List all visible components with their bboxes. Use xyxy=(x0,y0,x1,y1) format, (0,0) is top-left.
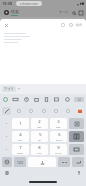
button[interactable]: 9 xyxy=(50,144,67,155)
staticText: JKL xyxy=(38,138,42,141)
staticText: PQRS xyxy=(17,151,24,154)
staticText: GHI xyxy=(18,138,23,141)
staticText: 3 xyxy=(57,119,60,125)
button[interactable]: 6 xyxy=(50,131,67,142)
staticText: DEF xyxy=(56,125,61,128)
button[interactable]: AI xyxy=(74,97,84,102)
button[interactable]: globe xyxy=(2,157,12,167)
staticText: MNO xyxy=(56,138,62,141)
button[interactable]: Delete xyxy=(75,107,84,115)
staticText: すべて xyxy=(59,10,69,14)
staticText: AI xyxy=(78,98,81,102)
button[interactable]: Quick action 1 xyxy=(14,107,23,115)
button[interactable]: Settings xyxy=(33,96,40,103)
button[interactable]: Voice search xyxy=(60,22,66,28)
staticText: 123 xyxy=(17,160,23,165)
staticText: a chrome.com xyxy=(20,2,38,6)
button[interactable]: 8 xyxy=(31,144,48,155)
button[interactable]: conv xyxy=(69,131,84,142)
staticText: 6 xyxy=(58,132,61,138)
staticText: アプリ xyxy=(4,87,14,91)
button[interactable]: Quick action 2 xyxy=(26,107,35,115)
staticText: 1 xyxy=(19,121,22,127)
button[interactable]: Site information xyxy=(3,9,9,15)
button[interactable]: arrows xyxy=(58,157,70,167)
button[interactable]: space2 xyxy=(69,144,84,155)
button[interactable]: Search xyxy=(71,10,76,15)
button[interactable]: 123 xyxy=(14,157,26,167)
staticText: TUV xyxy=(37,151,42,154)
staticText: 4 xyxy=(19,132,22,138)
staticText: 8 xyxy=(38,145,41,151)
button[interactable]: Quick action 3 xyxy=(39,107,48,115)
button[interactable]: enter xyxy=(72,157,84,167)
button[interactable]: Change keyboard xyxy=(4,170,10,176)
staticText: 検索 xyxy=(76,23,82,27)
button[interactable]: Quick action 4 xyxy=(51,107,60,115)
button[interactable]: アプリ xyxy=(4,87,14,91)
button[interactable]: Clipboard xyxy=(23,96,30,103)
button[interactable]: Voice input xyxy=(76,170,82,176)
staticText: 18:08 xyxy=(2,1,13,6)
button[interactable]: Themes xyxy=(12,96,19,103)
button[interactable]: 2 xyxy=(31,118,48,129)
button[interactable]: Handwriting xyxy=(2,107,11,115)
button[interactable]: a chrome.com xyxy=(16,1,42,6)
staticText: ABC xyxy=(37,125,42,128)
button[interactable]: 1 xyxy=(12,118,29,129)
button[interactable]: 3 xyxy=(50,118,67,129)
button[interactable]: Sticker xyxy=(43,96,50,103)
button[interactable]: backspace xyxy=(69,118,84,129)
button[interactable]: Close xyxy=(4,23,9,28)
button[interactable]: Mic xyxy=(64,96,71,103)
staticText: 5 xyxy=(39,132,42,138)
button[interactable]: 5 xyxy=(31,131,48,142)
button[interactable]: Google xyxy=(2,96,9,103)
staticText: 2 xyxy=(38,119,41,125)
button[interactable]: 7 xyxy=(12,144,29,155)
button[interactable]: Tabs xyxy=(78,10,83,15)
staticText: 9 xyxy=(57,145,60,151)
button[interactable]: 4 xyxy=(12,131,29,142)
staticText: 検索 xyxy=(11,9,19,14)
button[interactable]: Lens xyxy=(68,22,74,28)
button[interactable]: Translate xyxy=(53,96,60,103)
staticText: 7 xyxy=(19,145,22,151)
staticText: WXYZ xyxy=(55,151,62,154)
button[interactable]: Quick action 5 xyxy=(63,107,72,115)
button[interactable]: space xyxy=(28,157,56,167)
staticText: × xyxy=(18,87,20,91)
